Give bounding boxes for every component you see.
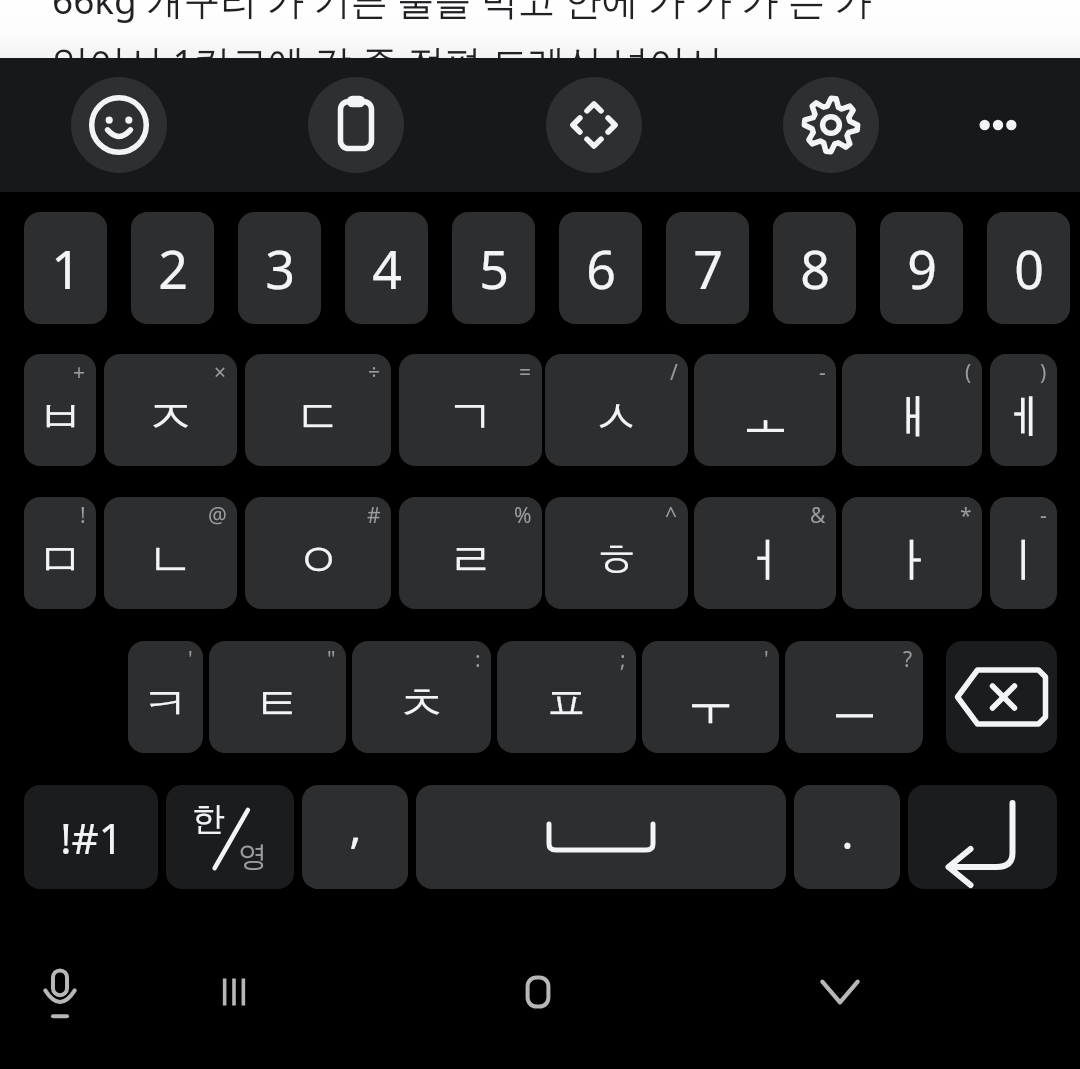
button[interactable]: Settings bbox=[783, 77, 879, 173]
staticText: × bbox=[214, 358, 227, 387]
button[interactable]: ㅈ bbox=[104, 354, 237, 466]
staticText: @ bbox=[208, 501, 227, 530]
staticText: ? bbox=[903, 645, 913, 674]
button[interactable]: ㅌ bbox=[209, 641, 346, 753]
staticText: 0 bbox=[1014, 233, 1044, 304]
button[interactable]: ㅇ bbox=[245, 497, 391, 609]
staticText: * bbox=[960, 501, 972, 530]
staticText: 2 bbox=[158, 233, 188, 304]
button[interactable]: ㄹ bbox=[399, 497, 542, 609]
staticText: ㅎ bbox=[593, 531, 640, 590]
staticText: / bbox=[670, 358, 678, 387]
staticText: ÷ bbox=[368, 358, 381, 387]
button[interactable]: Voice input bbox=[8, 940, 112, 1044]
button[interactable]: ㅁ bbox=[24, 497, 96, 609]
button[interactable]: ㅋ bbox=[128, 641, 203, 753]
staticText: ) bbox=[1040, 358, 1047, 387]
button[interactable]: ㅏ bbox=[842, 497, 982, 609]
button[interactable]: ㅜ bbox=[642, 641, 779, 753]
staticText: !#1 bbox=[60, 809, 123, 866]
staticText: % bbox=[514, 501, 532, 530]
button[interactable]: 9 bbox=[880, 212, 963, 324]
staticText: 한 bbox=[192, 798, 225, 840]
button[interactable]: 2 bbox=[131, 212, 214, 324]
staticText: . bbox=[841, 800, 854, 863]
staticText: ㅊ bbox=[398, 675, 445, 734]
staticText: ( bbox=[965, 358, 972, 387]
button[interactable]: , bbox=[302, 785, 408, 889]
staticText: 4 bbox=[372, 233, 402, 304]
button[interactable]: Korean English toggle bbox=[166, 785, 294, 889]
button[interactable]: 8 bbox=[773, 212, 856, 324]
button[interactable]: ㄴ bbox=[104, 497, 237, 609]
button[interactable]: Enter bbox=[908, 785, 1057, 889]
staticText: : bbox=[475, 645, 481, 674]
staticText: 있어서 1킬로에 각 중 절편 드레싱 넣어서 bbox=[52, 36, 723, 87]
staticText: 영 bbox=[238, 838, 267, 875]
button[interactable]: ㄷ bbox=[245, 354, 391, 466]
button[interactable]: ㄱ bbox=[399, 354, 542, 466]
staticText: 5 bbox=[479, 233, 509, 304]
button[interactable]: 4 bbox=[345, 212, 428, 324]
button[interactable]: ㅐ bbox=[842, 354, 982, 466]
button[interactable]: Emoji bbox=[71, 77, 167, 173]
staticText: 7 bbox=[693, 233, 723, 304]
staticText: = bbox=[519, 358, 532, 387]
button[interactable]: ㅅ bbox=[545, 354, 688, 466]
staticText: 9 bbox=[907, 233, 937, 304]
staticText: ㅗ bbox=[742, 388, 789, 447]
button[interactable]: 1 bbox=[24, 212, 107, 324]
staticText: 3 bbox=[265, 233, 295, 304]
staticText: ㅡ bbox=[831, 675, 878, 734]
staticText: + bbox=[73, 358, 86, 387]
staticText: ㅋ bbox=[142, 675, 189, 734]
staticText: ㅏ bbox=[889, 531, 936, 590]
button[interactable]: ㅡ bbox=[785, 641, 923, 753]
staticText: - bbox=[819, 358, 826, 387]
button[interactable]: 5 bbox=[452, 212, 535, 324]
staticText: ^ bbox=[665, 501, 678, 530]
button[interactable]: Space bbox=[416, 785, 786, 889]
button[interactable]: ㅔ bbox=[990, 354, 1057, 466]
staticText: ㅈ bbox=[147, 388, 194, 447]
button[interactable]: ㅗ bbox=[694, 354, 836, 466]
staticText: ㅓ bbox=[742, 531, 789, 590]
button[interactable]: Home bbox=[486, 940, 590, 1044]
staticText: ㄱ bbox=[447, 388, 494, 447]
staticText: 8 bbox=[800, 233, 830, 304]
staticText: ㅔ bbox=[1000, 388, 1047, 447]
button[interactable]: ㅎ bbox=[545, 497, 688, 609]
staticText: ㅣ bbox=[1000, 531, 1047, 590]
staticText: ㅌ bbox=[254, 675, 301, 734]
staticText: 1 bbox=[51, 233, 81, 304]
button[interactable]: ㅓ bbox=[694, 497, 836, 609]
button[interactable]: ㅍ bbox=[497, 641, 636, 753]
staticText: ㄴ bbox=[147, 531, 194, 590]
button[interactable]: Recent apps bbox=[182, 940, 286, 1044]
button[interactable]: Clipboard bbox=[308, 77, 404, 173]
staticText: , bbox=[349, 794, 362, 857]
button[interactable]: Cursor control bbox=[546, 77, 642, 173]
staticText: ㅇ bbox=[295, 531, 342, 590]
staticText: - bbox=[1040, 501, 1047, 530]
staticText: ㅜ bbox=[687, 675, 734, 734]
button[interactable]: 6 bbox=[559, 212, 642, 324]
button[interactable]: More options bbox=[950, 77, 1046, 173]
staticText: ㅍ bbox=[543, 675, 590, 734]
button[interactable]: 0 bbox=[987, 212, 1070, 324]
button[interactable]: ㅊ bbox=[352, 641, 491, 753]
staticText: ' bbox=[764, 645, 769, 674]
button[interactable]: Backspace bbox=[946, 641, 1057, 753]
button[interactable]: Hide keyboard bbox=[788, 940, 892, 1044]
staticText: ㅐ bbox=[889, 388, 936, 447]
button[interactable]: ㅂ bbox=[24, 354, 96, 466]
staticText: ' bbox=[188, 645, 193, 674]
staticText: ; bbox=[620, 645, 626, 674]
button[interactable]: !#1 bbox=[24, 785, 158, 889]
staticText: ㅁ bbox=[37, 531, 84, 590]
button[interactable]: 3 bbox=[238, 212, 321, 324]
button[interactable]: . bbox=[794, 785, 900, 889]
button[interactable]: ㅣ bbox=[990, 497, 1057, 609]
staticText: 66kg 개구리 가 기른 물을 먹고 안에 가 가 가 는 가 bbox=[52, 0, 872, 25]
button[interactable]: 7 bbox=[666, 212, 749, 324]
